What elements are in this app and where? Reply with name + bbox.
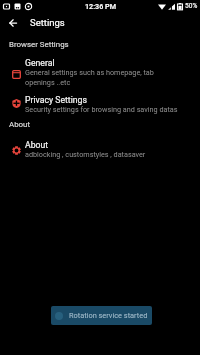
staticText: Privacy Settings xyxy=(25,95,87,105)
staticText: About xyxy=(9,120,31,129)
staticText: adblocking , customstyles , datasaver xyxy=(25,150,146,158)
staticText: 50% xyxy=(185,2,198,10)
staticText: General xyxy=(25,58,55,68)
staticText: General settings such as homepage, tab o… xyxy=(25,68,154,87)
staticText: About xyxy=(25,140,49,150)
button[interactable]: About xyxy=(0,140,200,174)
button[interactable]: General xyxy=(0,58,200,92)
staticText: 12:36 PM xyxy=(85,2,116,10)
staticText: Settings xyxy=(30,17,65,28)
button[interactable]: Back xyxy=(4,14,21,31)
staticText: Rotation service started xyxy=(69,311,148,320)
button[interactable]: Privacy Settings xyxy=(0,95,200,129)
button[interactable]: Rotation service started xyxy=(51,306,152,325)
staticText: Security settings for browsing and savin… xyxy=(25,105,178,113)
staticText: Browser Settings xyxy=(9,40,69,49)
